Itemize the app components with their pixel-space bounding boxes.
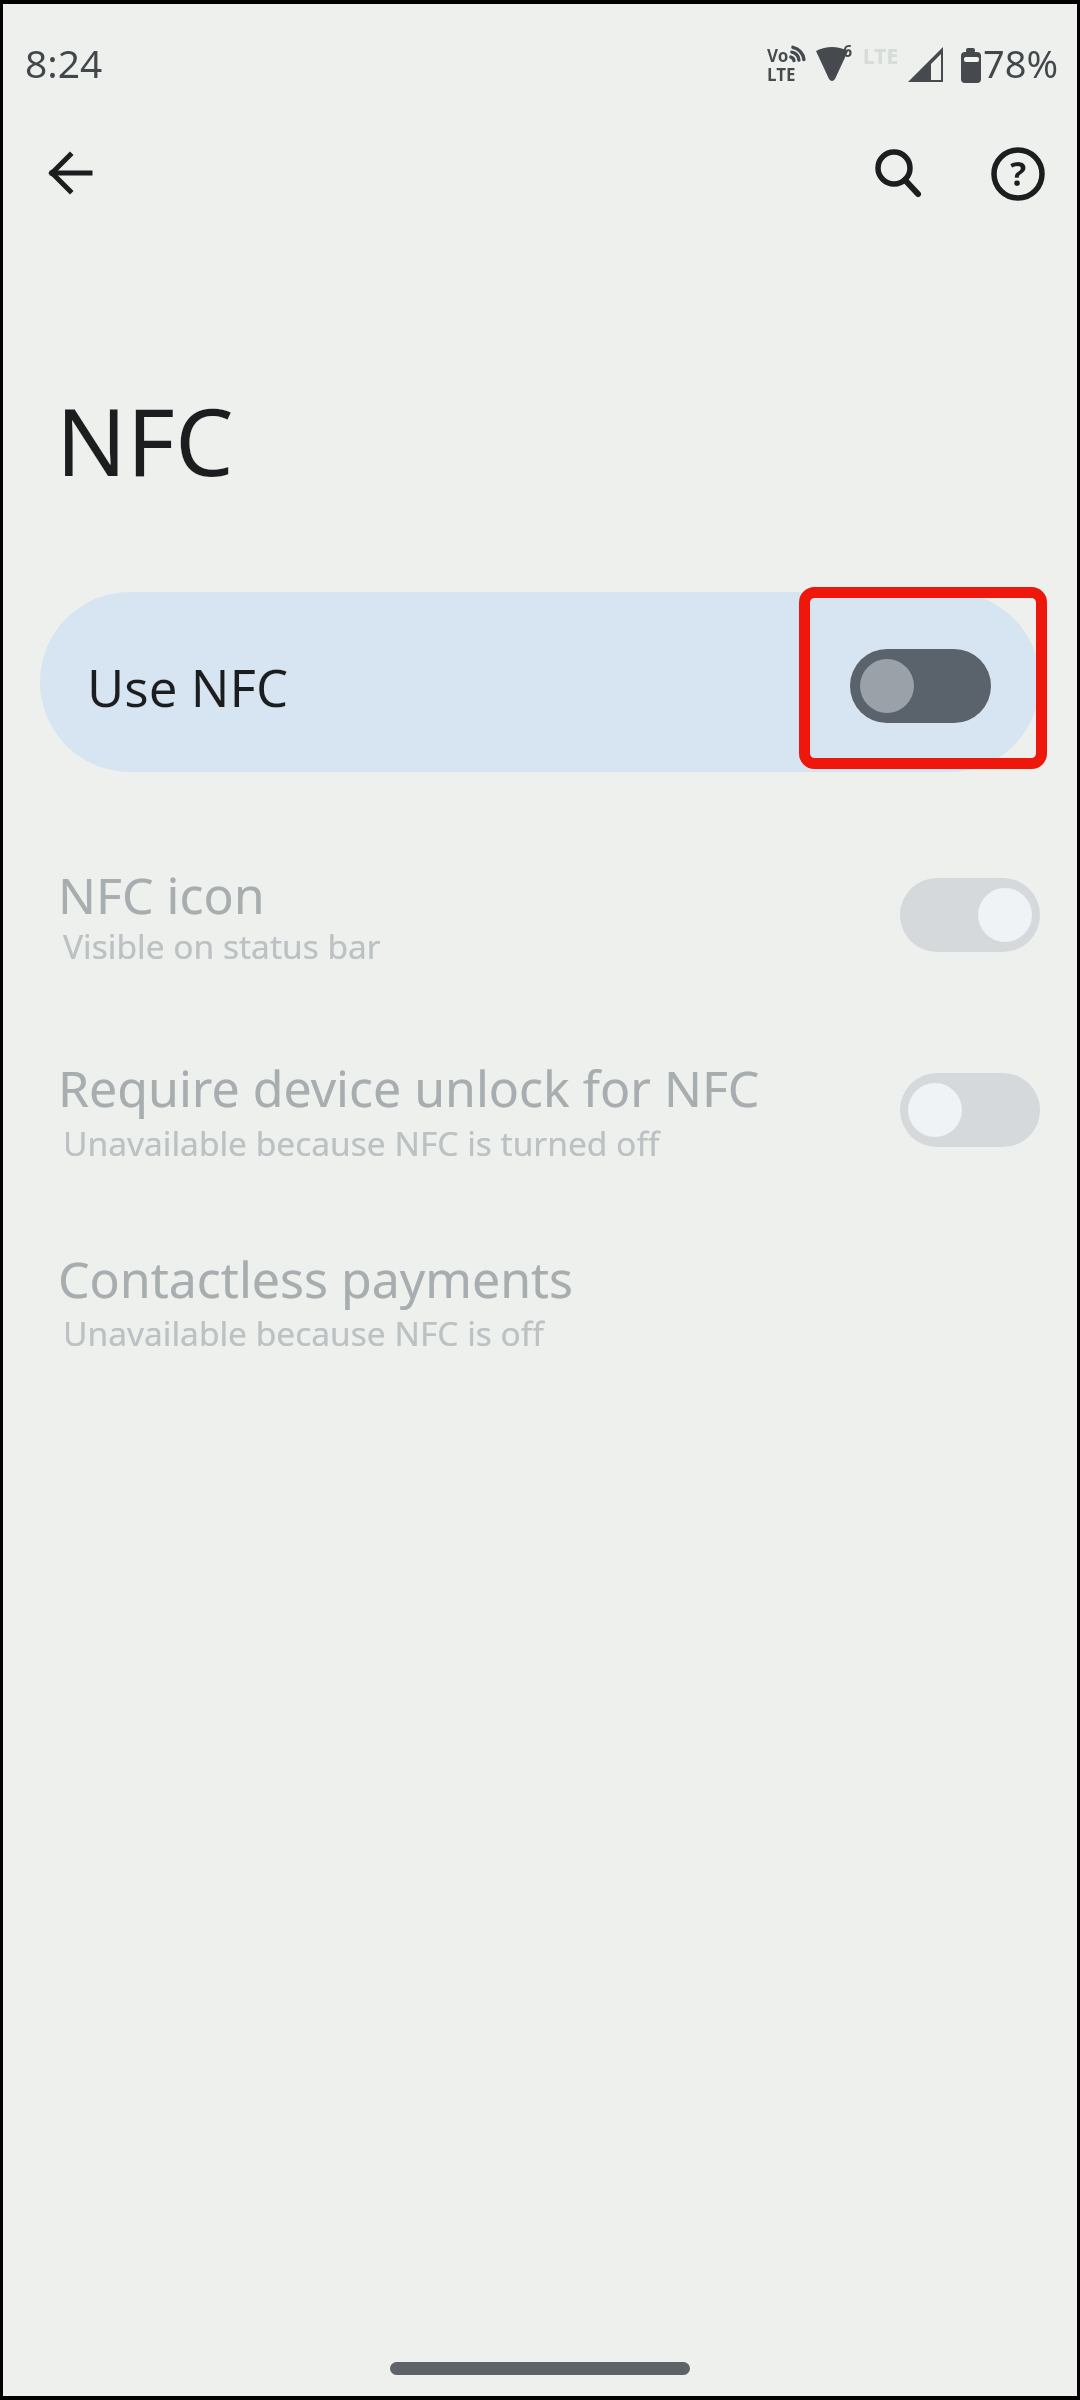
- staticText: Unavailable because NFC is off: [63, 1310, 544, 1356]
- button[interactable]: Require device unlock for NFC: [3, 1054, 1077, 1204]
- staticText: Contactless payments: [58, 1245, 574, 1313]
- staticText: Use NFC: [87, 652, 289, 721]
- button[interactable]: Use NFC: [40, 592, 1040, 772]
- staticText: NFC: [56, 377, 234, 504]
- staticText: LTE: [863, 42, 899, 71]
- staticText: 78%: [983, 37, 1059, 89]
- button[interactable]: [856, 133, 940, 217]
- button[interactable]: Contactless payments: [3, 1245, 1077, 1395]
- button[interactable]: NFC icon: [3, 861, 1077, 1011]
- staticText: Unavailable because NFC is turned off: [63, 1120, 660, 1166]
- staticText: 8:24: [25, 36, 103, 89]
- staticText: LTE: [767, 63, 796, 86]
- staticText: ?: [1010, 150, 1027, 196]
- button[interactable]: ?: [976, 132, 1060, 216]
- button[interactable]: [29, 131, 113, 215]
- staticText: 6: [843, 40, 853, 62]
- staticText: Vo: [767, 44, 789, 67]
- staticText: Visible on status bar: [63, 923, 381, 969]
- staticText: NFC icon: [58, 861, 265, 929]
- staticText: Require device unlock for NFC: [58, 1054, 760, 1122]
